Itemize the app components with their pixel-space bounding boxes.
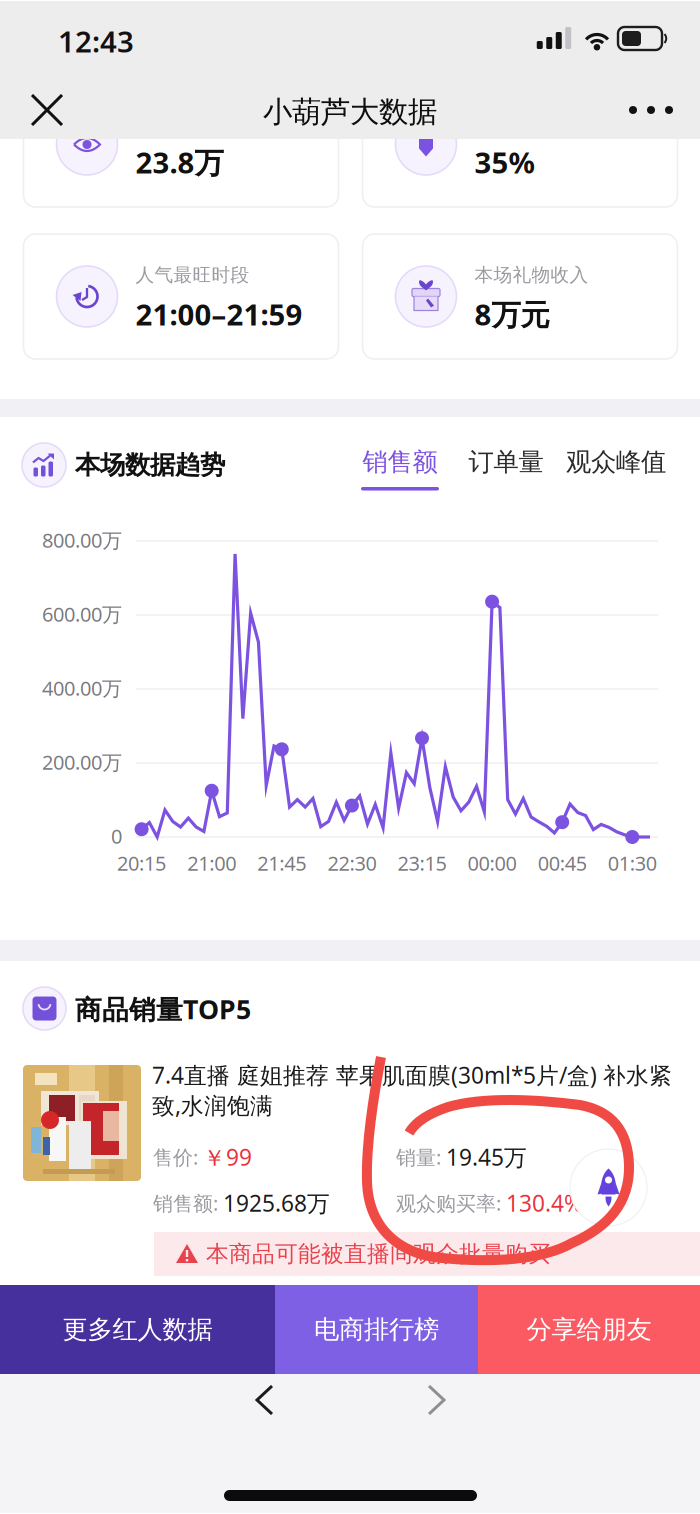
staticText: 00:00 [468, 850, 517, 876]
staticText: 7.4直播 庭姐推荐 苹果肌面膜(30ml*5片/盒) 补水紧致,水润饱满 [152, 1060, 672, 1120]
staticText: 观众峰值 [566, 446, 666, 477]
staticText: 20:15 [117, 850, 166, 876]
staticText: 小葫芦大数据 [263, 94, 437, 130]
staticText: 订单量 [468, 446, 543, 477]
staticText: 12:43 [58, 21, 134, 60]
button[interactable]: 更多红人数据 [0, 1285, 275, 1374]
staticText: ￥99 [203, 1142, 252, 1172]
staticText: 21:45 [257, 850, 306, 876]
button[interactable]: 电商排行榜 [275, 1285, 478, 1374]
button[interactable]: More [622, 81, 680, 139]
staticText: 400.00万 [42, 675, 122, 701]
staticText: 销售额: [153, 1190, 223, 1216]
staticText: 00:45 [538, 850, 587, 876]
staticText: 23:15 [397, 850, 446, 876]
staticText: 售价: [153, 1144, 203, 1170]
button[interactable]: 订单量 [465, 445, 547, 495]
staticText: 本商品可能被直播间观众批量购买 [206, 1240, 551, 1268]
button[interactable]: Forward [415, 1374, 459, 1426]
staticText: 本场礼物收入 [474, 263, 588, 286]
staticText: 130.4% [506, 1188, 583, 1218]
staticText: 销量: [396, 1144, 446, 1170]
staticText: 更多红人数据 [62, 1314, 212, 1345]
staticText: 电商排行榜 [314, 1314, 439, 1345]
button[interactable]: 观众峰值 [564, 445, 668, 495]
staticText: 600.00万 [42, 601, 122, 627]
staticText: 商品销量TOP5 [75, 991, 251, 1027]
staticText: 800.00万 [42, 527, 122, 553]
button[interactable]: Back [243, 1374, 287, 1426]
staticText: 分享给朋友 [526, 1314, 651, 1345]
staticText: 35% [474, 142, 534, 181]
staticText: 销售额 [362, 446, 437, 477]
staticText: 8万元 [474, 294, 549, 333]
staticText: 0 [111, 823, 122, 849]
staticText: 200.00万 [42, 749, 122, 775]
button[interactable]: 分享给朋友 [478, 1285, 700, 1374]
staticText: 23.8万 [135, 142, 223, 181]
staticText: 19.45万 [446, 1142, 527, 1172]
staticText: 21:00 [187, 850, 236, 876]
staticText: 1925.68万 [223, 1188, 330, 1218]
staticText: 21:00–21:59 [135, 294, 302, 333]
staticText: 01:30 [608, 850, 657, 876]
staticText: 人气最旺时段 [135, 263, 249, 286]
staticText: 22:30 [327, 850, 376, 876]
button[interactable]: Back to top [570, 1149, 647, 1226]
button[interactable]: Close [18, 81, 76, 139]
staticText: 观众购买率: [396, 1190, 506, 1216]
button[interactable]: 销售额 [359, 445, 441, 495]
staticText: 本场数据趋势 [75, 449, 225, 480]
